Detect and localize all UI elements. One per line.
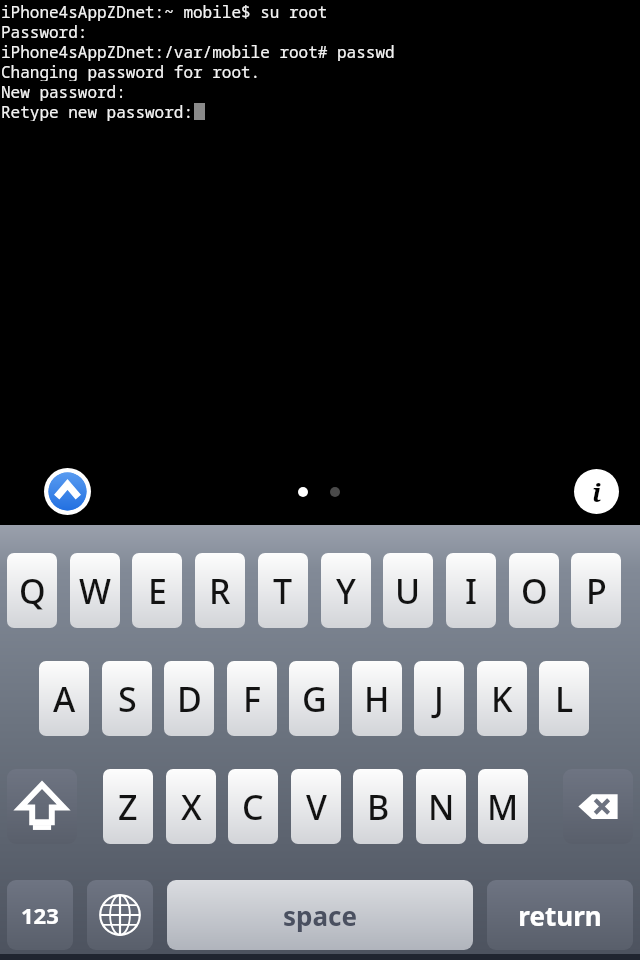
staticText: 123 [21, 900, 59, 930]
staticText: I [465, 568, 478, 614]
staticText: M [487, 784, 519, 830]
staticText: Password: [1, 21, 88, 41]
button[interactable]: V [291, 769, 341, 844]
staticText: Changing password for root. [1, 61, 261, 81]
staticText: iPhone4sAppZDnet:~ mobile$ su root [1, 1, 328, 21]
staticText: P [586, 568, 607, 614]
staticText: E [148, 568, 167, 614]
button[interactable]: D [164, 661, 214, 736]
button[interactable]: E [132, 553, 182, 628]
staticText: F [243, 676, 261, 722]
staticText: L [555, 676, 574, 722]
staticText: Q [19, 568, 46, 614]
staticText: space [283, 898, 357, 933]
button[interactable]: F [227, 661, 277, 736]
button[interactable]: L [539, 661, 589, 736]
staticText: D [177, 676, 202, 722]
staticText: J [434, 676, 444, 722]
button[interactable]: J [414, 661, 464, 736]
button[interactable]: H [352, 661, 402, 736]
button[interactable]: T [258, 553, 308, 628]
button[interactable]: U [383, 553, 433, 628]
button[interactable]: P [571, 553, 621, 628]
button[interactable]: Q [7, 553, 57, 628]
button[interactable]: X [166, 769, 216, 844]
staticText: Y [336, 568, 356, 614]
button[interactable]: C [228, 769, 278, 844]
button[interactable]: Y [321, 553, 371, 628]
staticText: C [242, 784, 264, 830]
button[interactable]: Scroll up [44, 468, 91, 515]
button[interactable]: Change keyboard language [87, 880, 153, 950]
staticText: R [209, 568, 231, 614]
button[interactable]: Backspace [563, 769, 633, 844]
staticText: U [395, 568, 421, 614]
staticText: T [273, 568, 293, 614]
button[interactable]: Info [574, 469, 619, 514]
button[interactable]: K [477, 661, 527, 736]
staticText: return [518, 898, 602, 933]
button[interactable]: R [195, 553, 245, 628]
button[interactable]: O [509, 553, 559, 628]
staticText: O [521, 568, 548, 614]
staticText: A [53, 676, 76, 722]
button[interactable]: space [167, 880, 473, 950]
button[interactable]: W [70, 553, 120, 628]
staticText: New password: [1, 81, 126, 101]
staticText: B [367, 784, 390, 830]
button[interactable]: Shift [7, 769, 77, 844]
staticText: i [592, 474, 602, 509]
button[interactable]: return [487, 880, 633, 950]
button[interactable]: N [416, 769, 466, 844]
button[interactable]: G [289, 661, 339, 736]
button[interactable]: I [446, 553, 496, 628]
staticText: K [491, 676, 513, 722]
staticText: iPhone4sAppZDnet:/var/mobile root# passw… [1, 41, 395, 61]
staticText: W [79, 568, 111, 614]
button[interactable]: 123 [7, 880, 73, 950]
staticText: V [306, 784, 327, 830]
staticText: X [181, 784, 202, 830]
staticText: S [118, 676, 137, 722]
button[interactable]: S [102, 661, 152, 736]
button[interactable]: B [353, 769, 403, 844]
button[interactable]: Z [103, 769, 153, 844]
staticText: N [428, 784, 455, 830]
button[interactable]: A [39, 661, 89, 736]
staticText: G [302, 676, 327, 722]
button[interactable]: M [478, 769, 528, 844]
staticText: Retype new password: [1, 101, 194, 121]
staticText: Z [118, 784, 138, 830]
staticText: H [364, 676, 390, 722]
